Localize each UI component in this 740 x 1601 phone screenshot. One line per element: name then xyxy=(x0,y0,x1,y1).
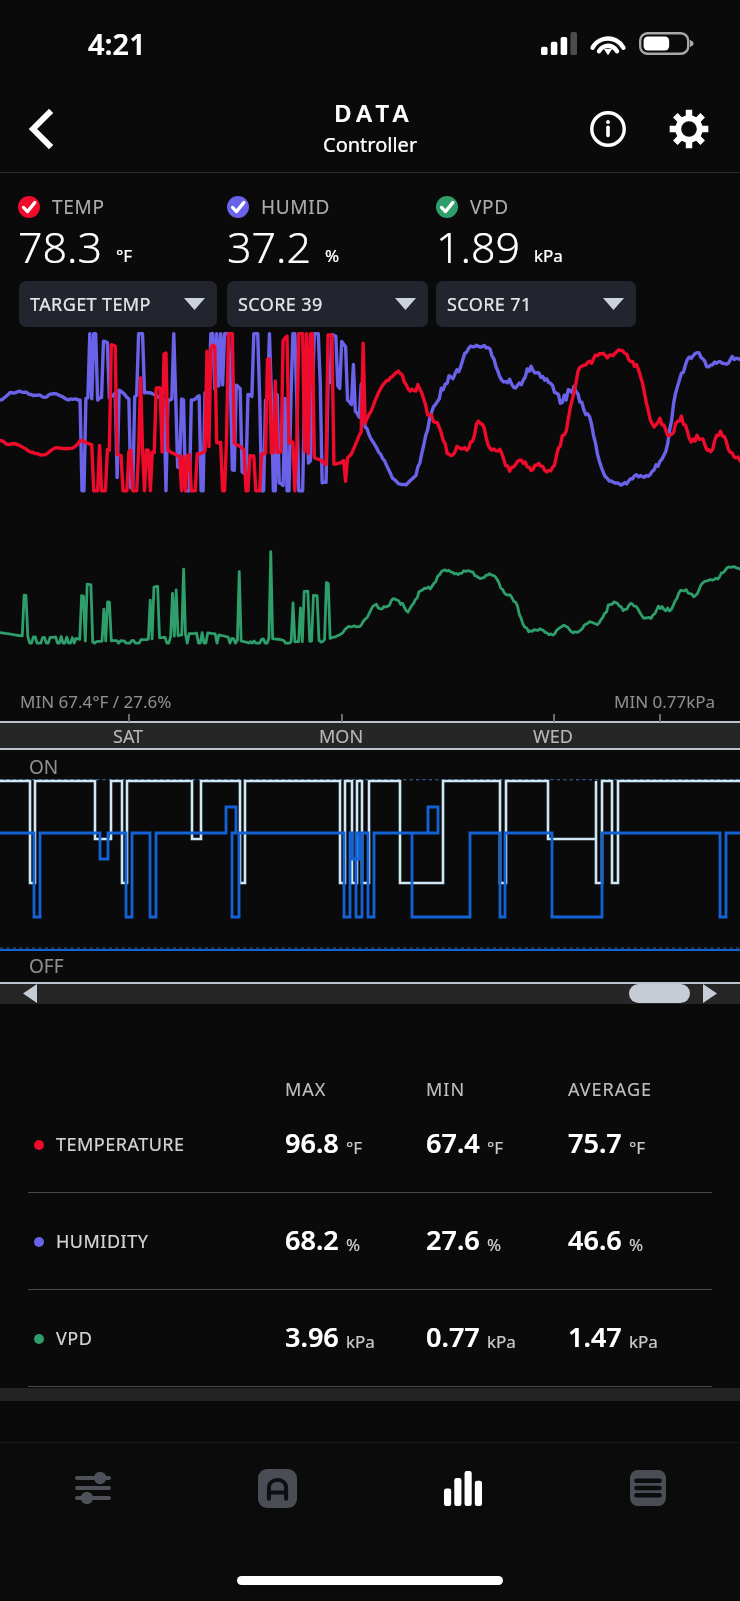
staticText: kPa xyxy=(346,1330,375,1353)
staticText: DATA xyxy=(334,96,414,129)
button[interactable]: TARGET TEMP xyxy=(19,281,217,327)
button[interactable]: Info xyxy=(580,101,636,157)
staticText: °F xyxy=(346,1136,363,1159)
staticText: kPa xyxy=(534,244,563,267)
staticText: 96.8 xyxy=(285,1124,339,1161)
staticText: °F xyxy=(116,244,133,267)
staticText: HUMID xyxy=(261,194,331,220)
staticText: 1.89 xyxy=(436,217,521,276)
button[interactable]: HUMIDITY xyxy=(0,1196,740,1287)
staticText: 27.6 xyxy=(426,1221,480,1258)
button[interactable]: Data xyxy=(370,1443,555,1533)
staticText: kPa xyxy=(629,1330,658,1353)
button[interactable]: Back xyxy=(8,97,72,161)
staticText: kPa xyxy=(487,1330,516,1353)
button[interactable]: VPD xyxy=(0,1293,740,1384)
staticText: 4:21 xyxy=(88,24,146,63)
staticText: 37.2 xyxy=(227,217,312,276)
staticText: MAX xyxy=(285,1077,327,1102)
staticText: 46.6 xyxy=(568,1221,622,1258)
staticText: 78.3 xyxy=(18,217,103,276)
button[interactable]: TEMPERATURE xyxy=(0,1099,740,1190)
staticText: VPD xyxy=(470,194,509,220)
staticText: HUMIDITY xyxy=(56,1229,149,1254)
staticText: OFF xyxy=(29,953,64,979)
staticText: 68.2 xyxy=(285,1221,339,1258)
staticText: °F xyxy=(629,1136,646,1159)
button[interactable]: Device xyxy=(185,1443,370,1533)
staticText: TARGET TEMP xyxy=(30,292,151,317)
staticText: WED xyxy=(533,724,573,749)
button[interactable]: Controls xyxy=(0,1443,185,1533)
staticText: Controller xyxy=(323,131,418,158)
staticText: MIN 67.4°F / 27.6% xyxy=(20,690,172,713)
button[interactable] xyxy=(629,984,690,1003)
staticText: MIN xyxy=(426,1077,466,1102)
staticText: % xyxy=(325,244,340,267)
staticText: °F xyxy=(487,1136,504,1159)
button[interactable]: Scroll right xyxy=(698,982,722,1004)
button[interactable]: SCORE 39 xyxy=(227,281,428,327)
staticText: % xyxy=(346,1233,361,1256)
staticText: TEMP xyxy=(52,194,105,220)
staticText: SCORE 39 xyxy=(238,292,323,317)
button[interactable]: Settings xyxy=(660,100,718,158)
staticText: MIN 0.77kPa xyxy=(614,690,716,713)
staticText: MON xyxy=(319,724,364,749)
staticText: AVERAGE xyxy=(568,1077,653,1102)
staticText: 67.4 xyxy=(426,1124,480,1161)
staticText: SCORE 71 xyxy=(447,292,532,317)
staticText: % xyxy=(487,1233,502,1256)
staticText: % xyxy=(629,1233,644,1256)
button[interactable]: Scroll left xyxy=(18,982,42,1004)
staticText: 1.47 xyxy=(568,1318,622,1355)
staticText: VPD xyxy=(56,1326,93,1351)
staticText: ON xyxy=(29,754,59,780)
button[interactable]: SCORE 71 xyxy=(436,281,636,327)
staticText: 0.77 xyxy=(426,1318,480,1355)
staticText: SAT xyxy=(113,724,144,749)
staticText: TEMPERATURE xyxy=(56,1132,185,1157)
button[interactable]: Menu xyxy=(555,1443,740,1533)
staticText: 3.96 xyxy=(285,1318,339,1355)
staticText: 75.7 xyxy=(568,1124,622,1161)
